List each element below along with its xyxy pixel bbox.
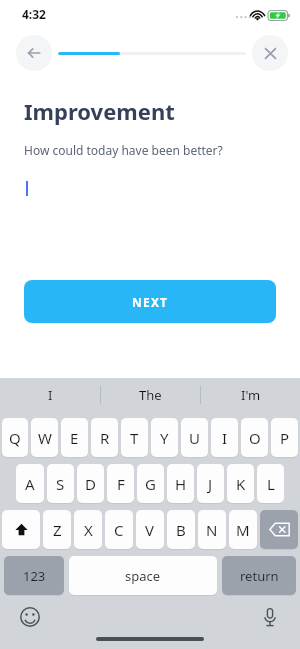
staticText: V (145, 520, 155, 540)
button[interactable]: Emoji (16, 603, 44, 631)
button[interactable]: V (136, 510, 164, 549)
staticText: N (206, 520, 218, 540)
button[interactable]: I'm (201, 378, 300, 411)
button[interactable]: P (271, 418, 298, 457)
staticText: How could today have been better? (24, 142, 223, 158)
button[interactable]: Backspace (260, 510, 298, 549)
button[interactable]: T (121, 418, 148, 457)
button[interactable]: K (227, 464, 254, 503)
button[interactable]: C (105, 510, 133, 549)
button[interactable]: M (229, 510, 257, 549)
button[interactable]: The (101, 378, 200, 411)
staticText: M (236, 520, 250, 540)
button[interactable]: E (61, 418, 88, 457)
button[interactable]: J (197, 464, 224, 503)
staticText: G (145, 474, 156, 494)
staticText: A (25, 474, 35, 494)
button[interactable]: H (167, 464, 194, 503)
button[interactable]: Return (222, 556, 296, 595)
staticText: Q (9, 428, 21, 448)
staticText: 4:32 (22, 6, 46, 22)
staticText: I (48, 386, 53, 404)
button[interactable]: Space (69, 556, 217, 595)
staticText: H (175, 474, 187, 494)
staticText: The (139, 386, 162, 404)
button[interactable]: A (16, 464, 44, 503)
button[interactable]: Close (252, 35, 288, 71)
staticText: I (222, 428, 228, 448)
staticText: W (38, 428, 52, 448)
staticText: X (84, 520, 93, 540)
button[interactable]: Numbers (4, 556, 64, 595)
button[interactable]: D (77, 464, 104, 503)
staticText: 123 (23, 567, 46, 585)
button[interactable]: I (0, 378, 100, 411)
button[interactable]: I (211, 418, 238, 457)
staticText: T (130, 428, 139, 448)
button[interactable]: Dictate (256, 603, 284, 631)
staticText: Y (160, 428, 169, 448)
button[interactable]: O (241, 418, 268, 457)
button[interactable]: B (167, 510, 195, 549)
button[interactable]: U (181, 418, 208, 457)
staticText: C (114, 520, 124, 540)
staticText: B (176, 520, 186, 540)
button[interactable]: L (257, 464, 284, 503)
staticText: NEXT (132, 294, 169, 310)
button[interactable]: X (74, 510, 102, 549)
button[interactable]: S (47, 464, 74, 503)
button[interactable]: Shift (2, 510, 40, 549)
button[interactable]: G (137, 464, 164, 503)
staticText: L (267, 474, 275, 494)
staticText: space (125, 567, 161, 585)
staticText: E (70, 428, 79, 448)
button[interactable]: W (31, 418, 58, 457)
button[interactable]: F (107, 464, 134, 503)
staticText: Z (53, 520, 62, 540)
button[interactable]: R (91, 418, 118, 457)
staticText: P (280, 428, 290, 448)
staticText: D (85, 474, 96, 494)
staticText: Improvement (24, 96, 175, 126)
staticText: I'm (241, 386, 261, 404)
button[interactable]: NEXT (24, 280, 276, 323)
button[interactable]: Z (43, 510, 71, 549)
staticText: U (189, 428, 200, 448)
button[interactable]: Back (16, 35, 52, 71)
staticText: return (240, 567, 279, 585)
button[interactable]: Y (151, 418, 178, 457)
staticText: O (249, 428, 261, 448)
staticText: K (236, 474, 246, 494)
staticText: J (208, 474, 213, 494)
staticText: R (100, 428, 110, 448)
staticText: S (56, 474, 65, 494)
button[interactable]: Q (2, 418, 28, 457)
staticText: F (117, 474, 125, 494)
button[interactable]: N (198, 510, 226, 549)
